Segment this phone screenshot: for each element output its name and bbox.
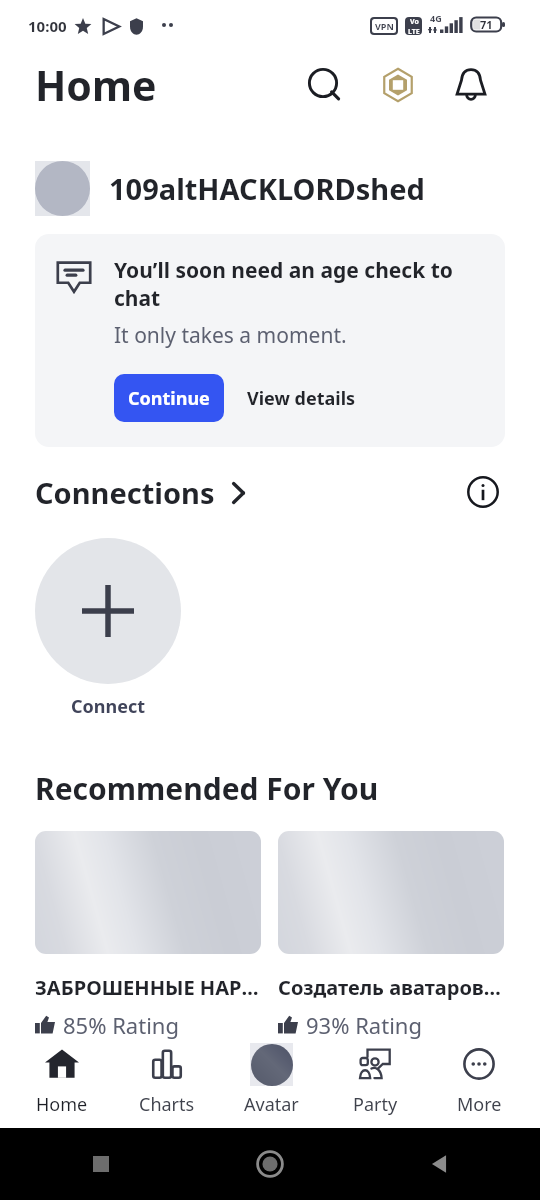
button[interactable]: Robux [375,62,421,108]
button[interactable]: Search [302,62,348,108]
staticText: 109altHACKLORDshed [109,169,425,208]
staticText: 4G [430,12,442,24]
button[interactable]: View details [224,374,379,422]
staticText: Connect [71,694,146,719]
staticText: View details [247,386,356,411]
staticText: Charts [139,1092,195,1117]
button[interactable]: Charts [114,1040,219,1117]
staticText: Connections [35,473,215,512]
button[interactable]: Создатель аватаров к... [278,831,504,1040]
staticText: Home [36,1092,88,1117]
staticText: VPN [375,20,394,32]
button[interactable]: Info [461,472,505,512]
staticText: 93% Rating [306,1010,422,1040]
button[interactable]: Avatar [219,1040,323,1117]
button[interactable]: Party [323,1040,427,1117]
button[interactable]: Connections [35,473,245,512]
staticText: Recommended For You [35,768,379,809]
staticText: 71 [480,17,493,32]
button[interactable]: Notifications [448,62,494,108]
button[interactable]: Connect [35,538,181,719]
staticText: Home [35,57,157,113]
staticText: LTE [408,27,420,35]
button[interactable]: Back [418,1143,460,1185]
button[interactable]: Home [9,1040,114,1117]
button[interactable]: Continue [114,374,224,422]
button[interactable]: ЗАБРОШЕННЫЕ НАРЯ... [35,831,261,1040]
staticText: Continue [128,386,210,411]
staticText: Party [353,1092,398,1117]
staticText: More [457,1092,502,1117]
staticText: 85% Rating [63,1010,179,1040]
staticText: You’ll soon need an age check to chat [114,256,489,312]
button[interactable]: 109altHACKLORDshed [35,161,505,216]
staticText: Vo [410,17,419,27]
staticText: Создатель аватаров к... [278,974,504,1001]
button[interactable]: Home [249,1143,291,1185]
staticText: It only takes a moment. [114,321,347,350]
button[interactable]: Recent apps [80,1143,122,1185]
button[interactable]: More [427,1040,531,1117]
staticText: ЗАБРОШЕННЫЕ НАРЯ... [35,974,261,1001]
staticText: Avatar [244,1092,299,1117]
staticText: 10:00 [28,16,67,36]
